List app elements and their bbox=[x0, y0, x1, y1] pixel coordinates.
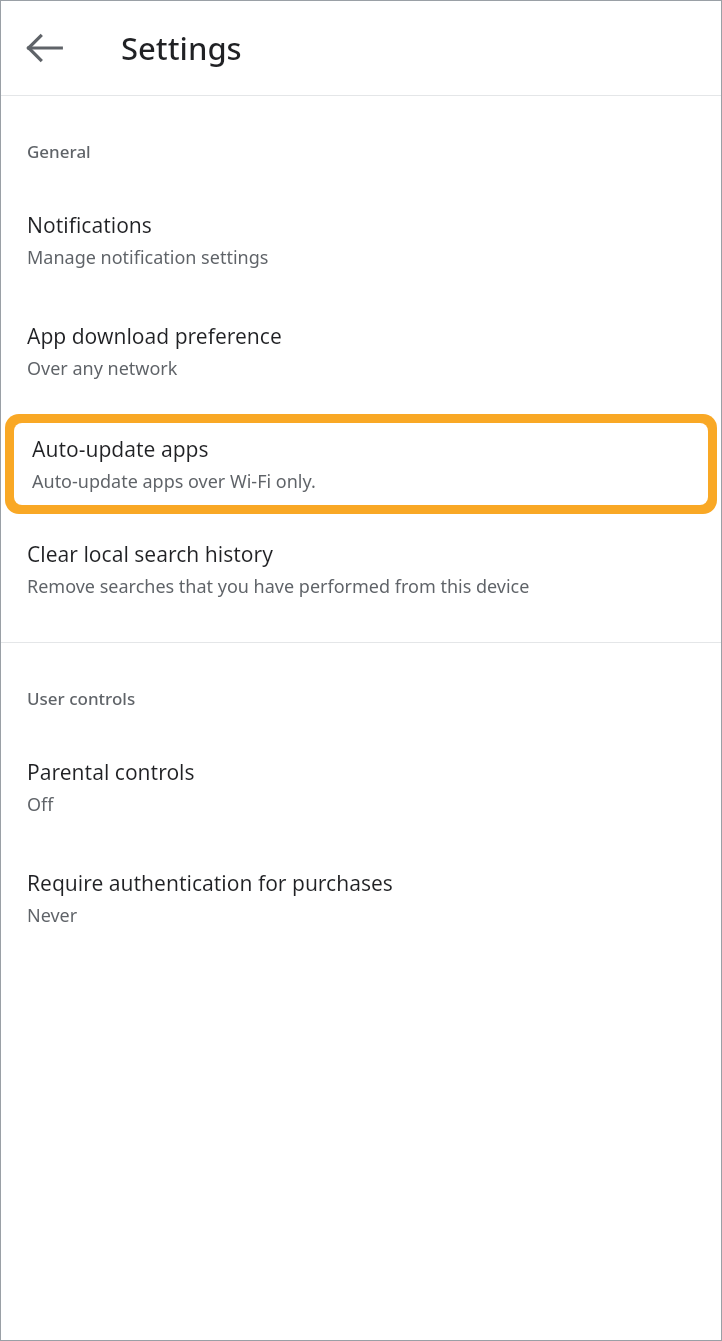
staticText: Settings bbox=[121, 27, 242, 69]
staticText: User controls bbox=[27, 687, 136, 710]
staticText: Off bbox=[27, 792, 54, 817]
button[interactable]: App download preference bbox=[0, 322, 722, 381]
staticText: Never bbox=[27, 903, 78, 928]
button[interactable]: Auto-update apps bbox=[5, 414, 717, 514]
staticText: Parental controls bbox=[27, 758, 195, 787]
button[interactable]: Back bbox=[21, 24, 69, 72]
staticText: Over any network bbox=[27, 356, 178, 381]
button[interactable]: Clear local search history bbox=[0, 540, 722, 599]
button[interactable]: Require authentication for purchases bbox=[0, 869, 722, 928]
staticText: Remove searches that you have performed … bbox=[27, 574, 530, 599]
button[interactable]: Parental controls bbox=[0, 758, 722, 817]
staticText: Auto-update apps bbox=[32, 435, 209, 464]
staticText: Clear local search history bbox=[27, 540, 273, 569]
staticText: Notifications bbox=[27, 211, 152, 240]
staticText: App download preference bbox=[27, 322, 282, 351]
staticText: Manage notification settings bbox=[27, 245, 269, 270]
staticText: Auto-update apps over Wi-Fi only. bbox=[32, 469, 316, 494]
button[interactable]: Notifications bbox=[0, 211, 722, 270]
staticText: General bbox=[27, 140, 91, 163]
staticText: Require authentication for purchases bbox=[27, 869, 393, 898]
